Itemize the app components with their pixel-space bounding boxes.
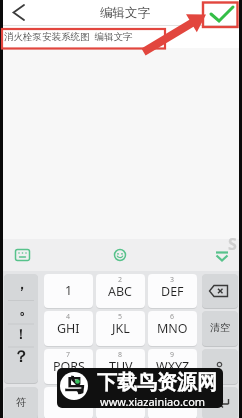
staticText: 8 [118, 350, 123, 360]
button[interactable]: 1 [44, 274, 93, 308]
staticText: S [228, 233, 237, 255]
staticText: GHI [57, 320, 80, 337]
staticText: 下载鸟资源网 [97, 370, 217, 395]
staticText: TUV [109, 358, 133, 375]
staticText: ！ [14, 326, 28, 343]
button[interactable] [202, 387, 238, 418]
button[interactable] [202, 274, 238, 308]
staticText: 鸟 [65, 374, 84, 398]
button[interactable]: 2 [96, 274, 145, 308]
button[interactable]: 6 [148, 311, 197, 346]
staticText: DEF [161, 283, 184, 300]
staticText: 消火栓泵安装系统图 编辑文字 [4, 30, 133, 43]
button[interactable]: 4 [44, 311, 93, 346]
staticText: WXYZ [156, 358, 190, 375]
button[interactable] [12, 245, 33, 265]
staticText: 7 [66, 350, 71, 360]
staticText: 编辑文字 [100, 5, 150, 21]
button[interactable] [96, 387, 145, 418]
staticText: 1 [65, 282, 73, 299]
staticText: 清空 [210, 321, 230, 334]
staticText: JKL [112, 320, 130, 337]
button[interactable]: ， [4, 274, 38, 383]
staticText: ABC [108, 283, 133, 300]
button[interactable] [202, 349, 238, 384]
staticText: ？ [13, 347, 29, 367]
staticText: 5 [118, 312, 123, 322]
staticText: PQRS [53, 358, 85, 375]
staticText: 4 [66, 312, 71, 322]
button[interactable]: 3 [148, 274, 197, 308]
staticText: 2 [118, 275, 123, 285]
button[interactable] [44, 387, 93, 418]
staticText: MNO [157, 320, 188, 337]
staticText: 符 [16, 396, 27, 409]
button[interactable]: 7 [44, 349, 93, 384]
button[interactable] [212, 248, 232, 264]
staticText: 9 [170, 350, 175, 360]
button[interactable] [110, 245, 130, 265]
button[interactable]: 鸟 [57, 368, 223, 408]
button[interactable]: 5 [96, 311, 145, 346]
staticText: ， [15, 276, 29, 293]
staticText: www.xiazainiao.com [100, 394, 206, 408]
button[interactable]: 符 [4, 387, 38, 418]
button[interactable]: 9 [148, 349, 197, 384]
button[interactable]: 8 [96, 349, 145, 384]
button[interactable] [148, 387, 197, 418]
staticText: 6 [170, 312, 175, 322]
button[interactable] [206, 3, 238, 25]
button[interactable]: 清空 [202, 311, 238, 346]
staticText: 。 [19, 301, 33, 318]
button[interactable] [8, 2, 30, 23]
staticText: 3 [170, 275, 175, 285]
